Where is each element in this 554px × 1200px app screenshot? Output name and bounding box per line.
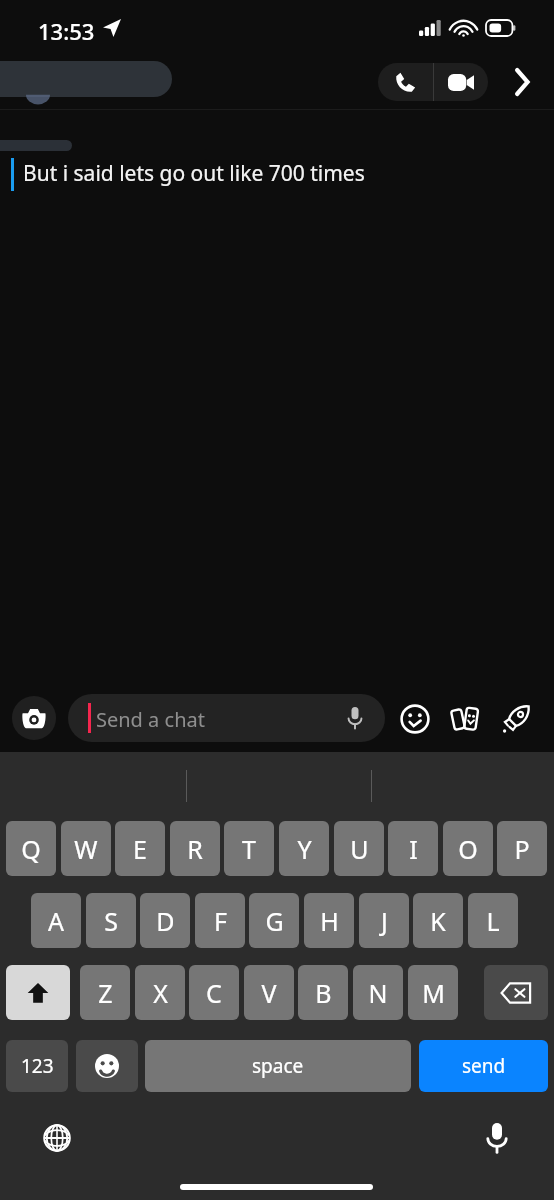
button[interactable]: E — [115, 821, 165, 876]
staticText: send — [462, 1053, 506, 1079]
button[interactable]: Q — [6, 821, 56, 876]
button[interactable]: Y — [279, 821, 329, 876]
staticText: M — [422, 976, 445, 1010]
staticText: But i said lets go out like 700 times — [23, 159, 365, 188]
staticText: space — [252, 1053, 304, 1079]
button[interactable]: Change keyboard — [36, 1117, 78, 1159]
button[interactable]: W — [61, 821, 111, 876]
staticText: L — [486, 904, 500, 938]
button[interactable]: T — [224, 821, 274, 876]
staticText: V — [261, 976, 277, 1010]
staticText: G — [265, 904, 284, 938]
staticText: S — [104, 904, 118, 938]
button[interactable]: U — [334, 821, 384, 876]
staticText: X — [153, 976, 168, 1010]
staticText: P — [514, 832, 530, 866]
button[interactable]: D — [140, 893, 190, 948]
button[interactable]: A — [31, 893, 81, 948]
button[interactable]: Send a chat — [68, 694, 385, 742]
button[interactable]: Stickers — [397, 701, 433, 737]
button[interactable]: Voice call — [378, 63, 433, 101]
staticText: I — [409, 832, 418, 866]
button[interactable]: J — [359, 893, 409, 948]
button[interactable]: Shift — [6, 965, 70, 1020]
staticText: E — [133, 832, 147, 866]
staticText: 123 — [21, 1053, 54, 1079]
staticText: H — [320, 904, 339, 938]
button[interactable]: X — [135, 965, 185, 1020]
button[interactable]: M — [408, 965, 458, 1020]
button[interactable]: Send — [419, 1040, 548, 1092]
button[interactable]: Video call — [434, 63, 488, 101]
button[interactable]: Z — [80, 965, 130, 1020]
button[interactable]: I — [388, 821, 438, 876]
button[interactable]: More — [502, 62, 542, 102]
staticText: Y — [297, 832, 312, 866]
staticText: C — [206, 976, 222, 1010]
button[interactable]: H — [304, 893, 354, 948]
staticText: K — [430, 904, 446, 938]
staticText: Send a chat — [96, 706, 205, 733]
staticText: D — [156, 904, 175, 938]
staticText: Z — [98, 976, 113, 1010]
button[interactable]: F — [195, 893, 245, 948]
staticText: 13:53 — [38, 16, 95, 46]
button[interactable]: N — [353, 965, 403, 1020]
staticText: F — [214, 904, 227, 938]
staticText: A — [48, 904, 64, 938]
button[interactable]: Cameo — [448, 701, 484, 737]
staticText: J — [381, 904, 388, 938]
button[interactable]: S — [86, 893, 136, 948]
button[interactable]: Backspace — [484, 965, 548, 1020]
button[interactable]: Emoji — [76, 1040, 138, 1092]
button[interactable]: G — [249, 893, 299, 948]
staticText: R — [187, 832, 203, 866]
button[interactable]: Games — [498, 701, 534, 737]
button[interactable]: Voice message — [343, 706, 367, 730]
staticText: N — [368, 976, 388, 1010]
staticText: O — [458, 832, 478, 866]
button[interactable]: Camera — [12, 696, 56, 740]
button[interactable]: Numbers — [6, 1040, 68, 1092]
staticText: W — [74, 832, 98, 866]
button[interactable]: L — [468, 893, 518, 948]
button[interactable]: R — [170, 821, 220, 876]
button[interactable]: P — [497, 821, 547, 876]
staticText: T — [242, 832, 256, 866]
button[interactable]: C — [189, 965, 239, 1020]
button[interactable] — [0, 61, 172, 97]
button[interactable]: V — [244, 965, 294, 1020]
button[interactable]: K — [413, 893, 463, 948]
button[interactable]: Dictation — [476, 1117, 518, 1159]
button[interactable]: Space — [145, 1040, 411, 1092]
staticText: Q — [21, 832, 41, 866]
button[interactable]: O — [443, 821, 493, 876]
button[interactable]: B — [298, 965, 348, 1020]
staticText: U — [350, 832, 369, 866]
staticText: B — [315, 976, 332, 1010]
